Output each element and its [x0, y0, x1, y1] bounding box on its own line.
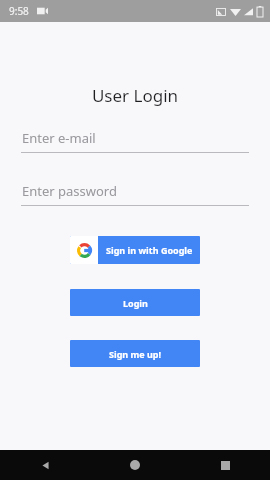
- staticText: Sign in with Google: [106, 244, 193, 256]
- staticText: Enter password: [22, 182, 117, 200]
- staticText: Login: [123, 297, 148, 309]
- button[interactable]: Enter password: [21, 182, 249, 206]
- button[interactable]: Enter e-mail: [21, 129, 249, 153]
- button[interactable]: Back: [0, 450, 90, 480]
- staticText: User Login: [0, 84, 270, 107]
- button[interactable]: Login: [70, 289, 200, 316]
- button[interactable]: Sign me up!: [70, 340, 200, 367]
- staticText: 9:58: [9, 4, 29, 18]
- staticText: Enter e-mail: [22, 129, 96, 147]
- button[interactable]: Sign in with Google: [70, 236, 200, 264]
- button[interactable]: Home: [90, 450, 180, 480]
- staticText: Sign me up!: [109, 348, 162, 360]
- button[interactable]: Recent apps: [180, 450, 270, 480]
